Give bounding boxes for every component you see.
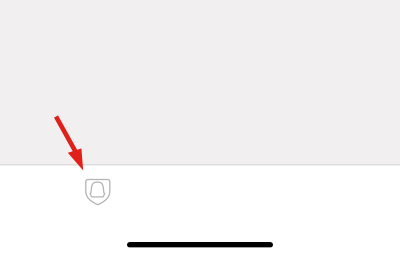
button[interactable]: Alerts bbox=[67, 168, 129, 217]
